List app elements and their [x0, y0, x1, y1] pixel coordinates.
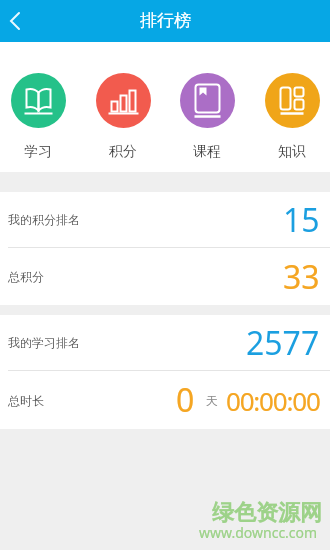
button[interactable]: 总时长 — [0, 371, 330, 429]
button[interactable]: 我的积分排名 — [0, 192, 330, 247]
staticText: 绿色资源网 — [212, 499, 322, 527]
button[interactable]: 我的学习排名 — [0, 315, 330, 370]
button[interactable]: 学习 — [7, 42, 69, 172]
button[interactable] — [0, 0, 42, 42]
button[interactable]: 积分 — [92, 42, 154, 172]
staticText: 总积分 — [8, 269, 44, 284]
staticText: 积分 — [109, 143, 137, 161]
staticText: 00:00:00 — [226, 383, 320, 418]
staticText: 总时长 — [8, 393, 44, 408]
staticText: 课程 — [193, 143, 221, 161]
button[interactable]: 课程 — [176, 42, 238, 172]
staticText: 0 — [176, 378, 195, 422]
staticText: 我的积分排名 — [8, 212, 80, 227]
staticText: 2577 — [246, 321, 320, 365]
staticText: 15 — [283, 198, 320, 242]
staticText: 我的学习排名 — [8, 335, 80, 350]
staticText: 排行榜 — [140, 10, 191, 31]
staticText: 知识 — [278, 143, 306, 161]
button[interactable]: 知识 — [261, 42, 323, 172]
staticText: www.downcc.com — [199, 523, 318, 542]
button[interactable]: 总积分 — [0, 248, 330, 305]
staticText: 33 — [283, 255, 320, 299]
staticText: 天 — [206, 393, 218, 408]
staticText: 学习 — [24, 143, 52, 161]
